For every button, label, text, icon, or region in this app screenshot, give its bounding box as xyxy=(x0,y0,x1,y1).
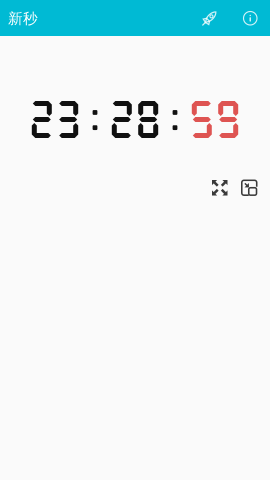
button[interactable]: Boost xyxy=(202,11,216,26)
button[interactable]: About xyxy=(243,11,257,25)
button[interactable]: Full screen xyxy=(212,180,227,195)
staticText: 新秒 xyxy=(8,9,38,27)
button[interactable]: Picture in picture xyxy=(241,179,257,196)
